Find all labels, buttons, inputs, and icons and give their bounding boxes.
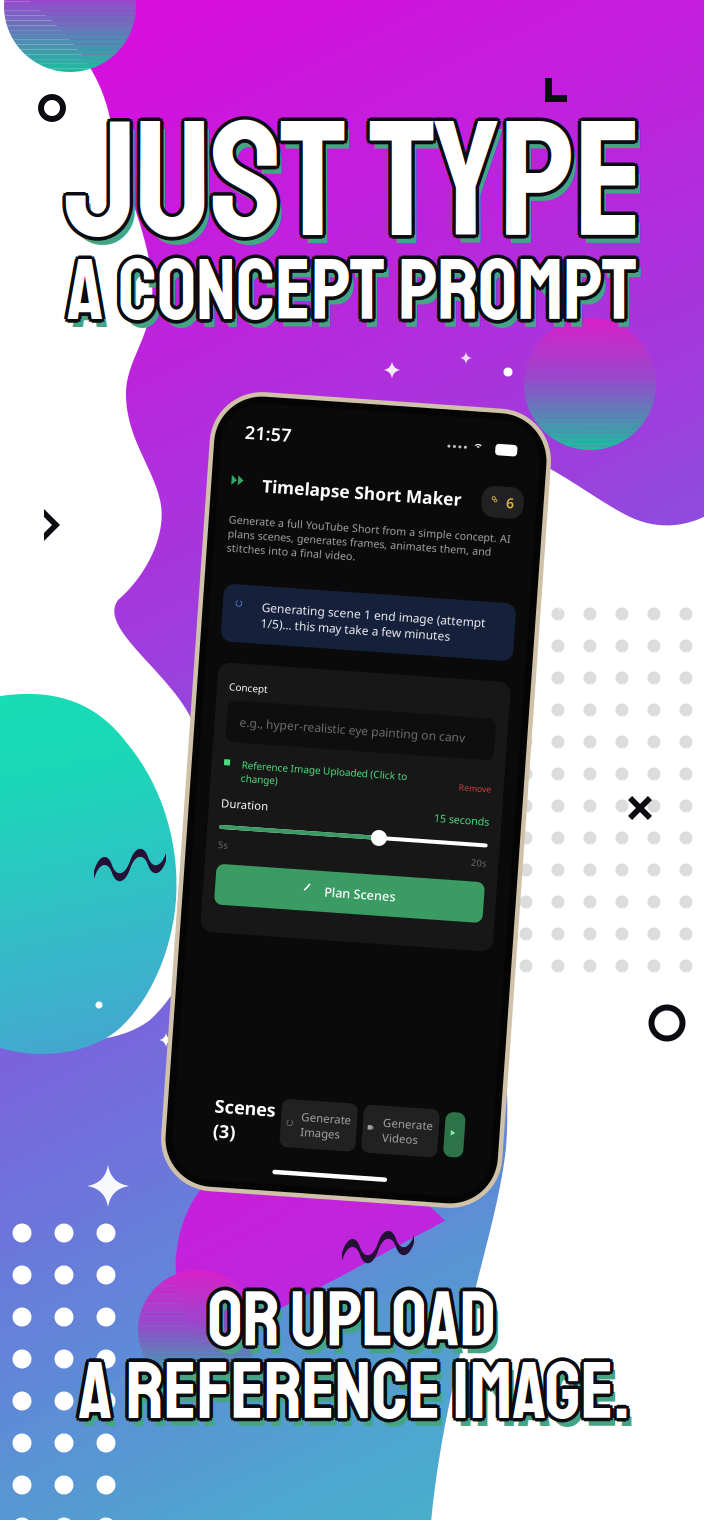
staticText: OR UPLOAD: [204, 1272, 493, 1368]
staticText: OR UPLOAD: [207, 1272, 496, 1368]
staticText: JUST TYPE: [64, 76, 643, 280]
staticText: A REFERENCE IMAGE.: [81, 1345, 632, 1444]
staticText: Timelapse Short Maker: [125, 163, 524, 209]
staticText: OR UPLOAD: [211, 1272, 500, 1368]
staticText: A REFERENCE IMAGE.: [78, 1346, 629, 1445]
staticText: A CONCEPT PROMPT: [70, 240, 640, 348]
staticText: JUST TYPE: [67, 77, 646, 281]
staticText: Generating scene 1 end image (attempt 1/…: [141, 412, 590, 476]
staticText: JUST TYPE: [61, 80, 640, 284]
staticText: A CONCEPT PROMPT: [70, 234, 640, 342]
staticText: Reference Image Uploaded (Click to chang…: [123, 732, 455, 785]
staticText: Remove: [559, 748, 625, 771]
staticText: A REFERENCE IMAGE.: [83, 1350, 634, 1450]
staticText: Concept: [87, 578, 164, 604]
staticText: A CONCEPT PROMPT: [67, 241, 637, 349]
staticText: JUST TYPE: [62, 77, 641, 281]
staticText: A REFERENCE IMAGE.: [76, 1340, 627, 1439]
staticText: A CONCEPT PROMPT: [64, 234, 634, 342]
staticText: OR UPLOAD: [212, 1280, 501, 1376]
staticText: A CONCEPT PROMPT: [71, 237, 641, 345]
staticText: JUST TYPE: [69, 88, 648, 292]
staticText: A REFERENCE IMAGE.: [82, 1342, 633, 1442]
staticText: JUST TYPE: [68, 80, 647, 284]
staticText: JUST TYPE: [67, 82, 646, 287]
staticText: 20s: [594, 896, 625, 920]
staticText: JUST TYPE: [64, 83, 643, 288]
staticText: OR UPLOAD: [205, 1274, 494, 1371]
staticText: OR UPLOAD: [205, 1269, 494, 1366]
staticText: A REFERENCE IMAGE.: [78, 1339, 629, 1438]
staticText: OR UPLOAD: [207, 1275, 496, 1372]
staticText: Generate Videos: [455, 1424, 555, 1484]
staticText: JUST TYPE: [64, 80, 643, 284]
staticText: A CONCEPT PROMPT: [64, 240, 634, 348]
staticText: 21:57: [83, 57, 177, 105]
staticText: A REFERENCE IMAGE.: [75, 1342, 626, 1442]
staticText: OR UPLOAD: [210, 1274, 499, 1371]
staticText: A REFERENCE IMAGE.: [78, 1342, 629, 1442]
staticText: A CONCEPT PROMPT: [67, 237, 637, 345]
staticText: Generate Images: [291, 1424, 391, 1484]
staticText: Generate a full YouTube Short from a sim…: [63, 243, 628, 328]
staticText: OR UPLOAD: [210, 1269, 499, 1366]
staticText: A CONCEPT PROMPT: [72, 245, 642, 353]
staticText: e.g., hyper-realistic eye painting on ca…: [113, 644, 565, 676]
staticText: JUST TYPE: [62, 82, 641, 287]
staticText: A CONCEPT PROMPT: [63, 237, 633, 345]
staticText: A REFERENCE IMAGE.: [76, 1345, 627, 1444]
staticText: A CONCEPT PROMPT: [67, 233, 637, 341]
staticText: A REFERENCE IMAGE.: [81, 1340, 632, 1439]
staticText: Scenes: [117, 1405, 239, 1453]
staticText: 15 seconds: [514, 810, 625, 839]
staticText: Duration: [87, 809, 182, 840]
staticText: 6: [614, 167, 630, 204]
staticText: OR UPLOAD: [207, 1268, 496, 1365]
